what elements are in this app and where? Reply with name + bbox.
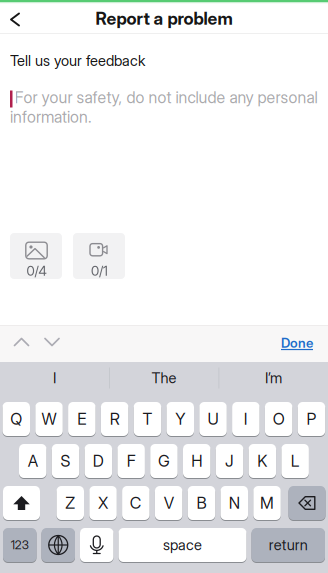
button[interactable]: M — [253, 486, 281, 520]
staticText: N — [229, 494, 240, 512]
staticText: I — [53, 369, 56, 387]
staticText: P — [306, 410, 316, 428]
button[interactable]: Delete — [288, 486, 325, 520]
staticText: L — [291, 452, 300, 470]
staticText: I’m — [265, 369, 282, 387]
button[interactable]: H — [183, 444, 210, 478]
button[interactable]: F — [117, 444, 145, 478]
staticText: Done — [281, 335, 313, 351]
button[interactable]: Previous field — [8, 329, 34, 355]
staticText: F — [127, 452, 136, 470]
button[interactable]: Add photos — [10, 233, 62, 279]
button[interactable]: Back — [4, 7, 28, 31]
button[interactable]: J — [216, 444, 243, 478]
staticText: D — [93, 452, 104, 470]
staticText: 0/4 — [27, 263, 47, 279]
staticText: R — [110, 410, 120, 428]
button[interactable]: K — [249, 444, 276, 478]
button[interactable]: E — [68, 402, 96, 436]
button[interactable]: X — [89, 486, 117, 520]
button[interactable]: T — [134, 402, 161, 436]
button[interactable]: 123 — [3, 528, 36, 562]
button[interactable]: N — [220, 486, 248, 520]
staticText: O — [273, 410, 285, 428]
button[interactable]: Z — [56, 486, 84, 520]
button[interactable]: D — [85, 444, 112, 478]
button[interactable]: The — [110, 362, 218, 394]
button[interactable]: space — [118, 528, 246, 562]
button[interactable]: Y — [166, 402, 194, 436]
button[interactable]: L — [281, 444, 309, 478]
staticText: H — [191, 452, 202, 470]
staticText: E — [77, 410, 86, 428]
staticText: V — [164, 494, 174, 512]
staticText: space — [163, 536, 202, 554]
button[interactable]: Q — [2, 402, 30, 436]
staticText: Tell us your feedback — [10, 52, 145, 69]
staticText: Report a problem — [95, 8, 232, 29]
staticText: S — [60, 452, 70, 470]
button[interactable]: I’m — [219, 362, 327, 394]
button[interactable]: Dictate — [80, 528, 113, 562]
staticText: return — [269, 536, 308, 554]
button[interactable]: V — [155, 486, 182, 520]
button[interactable]: Shift — [3, 486, 40, 520]
button[interactable]: R — [101, 402, 128, 436]
button[interactable]: P — [298, 402, 325, 436]
button[interactable]: Next field — [39, 329, 65, 355]
button[interactable]: I — [232, 402, 260, 436]
staticText: The — [151, 369, 176, 387]
button[interactable]: I — [0, 362, 108, 394]
staticText: U — [207, 410, 218, 428]
staticText: I — [244, 410, 248, 428]
staticText: T — [142, 410, 152, 428]
button[interactable]: Add video — [73, 233, 125, 279]
staticText: 123 — [11, 538, 29, 552]
staticText: A — [28, 452, 38, 470]
button[interactable]: G — [150, 444, 178, 478]
staticText: B — [196, 494, 206, 512]
staticText: G — [158, 452, 170, 470]
staticText: K — [257, 452, 267, 470]
button[interactable]: return — [251, 528, 325, 562]
button[interactable]: S — [52, 444, 79, 478]
button[interactable]: Next keyboard — [41, 528, 75, 562]
button[interactable]: Done — [281, 335, 313, 351]
button[interactable]: U — [199, 402, 227, 436]
button[interactable]: B — [188, 486, 215, 520]
button[interactable]: C — [122, 486, 150, 520]
staticText: M — [260, 494, 274, 512]
staticText: Y — [175, 410, 185, 428]
button[interactable]: O — [265, 402, 292, 436]
button[interactable]: A — [19, 444, 46, 478]
staticText: Z — [65, 494, 75, 512]
button[interactable]: W — [35, 402, 63, 436]
staticText: For your safety, do not include any pers… — [14, 88, 317, 107]
staticText: information. — [10, 107, 92, 126]
staticText: J — [225, 452, 234, 470]
staticText: W — [41, 410, 56, 428]
staticText: X — [98, 494, 108, 512]
staticText: Q — [10, 410, 22, 428]
staticText: C — [130, 494, 142, 512]
staticText: 0/1 — [91, 263, 108, 279]
